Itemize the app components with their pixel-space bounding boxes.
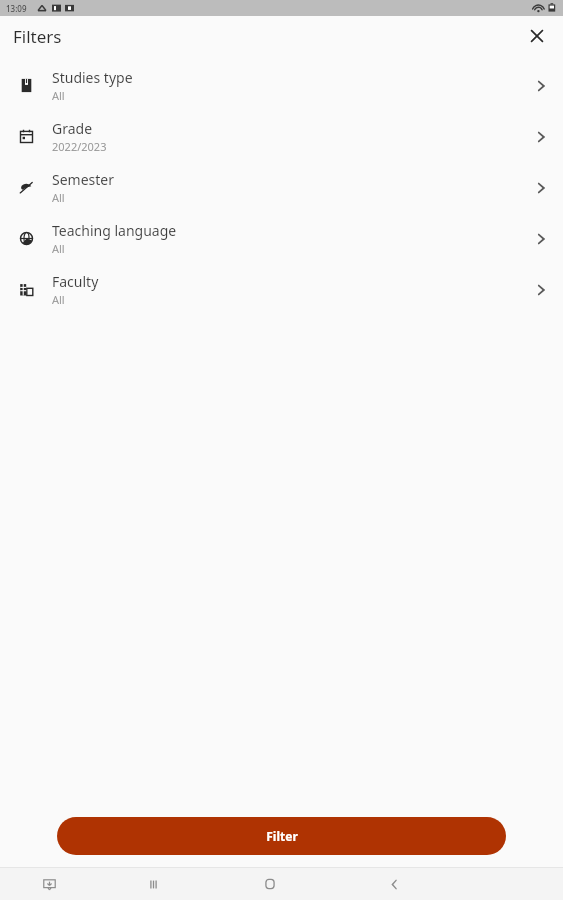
staticText: 2022/2023 [52, 139, 107, 154]
staticText: Filters [13, 25, 62, 48]
button[interactable]: Close [521, 20, 553, 52]
staticText: All [52, 88, 65, 103]
staticText: All [52, 241, 65, 256]
staticText: All [52, 292, 65, 307]
button[interactable]: Keyboard [0, 868, 98, 900]
button[interactable]: Teaching language [0, 213, 563, 264]
staticText: 13:09 [6, 3, 27, 14]
staticText: Grade [52, 119, 93, 138]
button[interactable]: Back [332, 868, 456, 900]
staticText: Filter [266, 828, 298, 844]
staticText: Semester [52, 170, 115, 189]
button[interactable]: Recents [98, 868, 208, 900]
staticText: Faculty [52, 272, 99, 291]
button[interactable]: Semester [0, 162, 563, 213]
button[interactable]: Filter [57, 817, 506, 855]
button[interactable]: Faculty [0, 264, 563, 315]
button[interactable]: Studies type [0, 60, 563, 111]
staticText: Studies type [52, 68, 133, 87]
button[interactable]: Home [208, 868, 332, 900]
button[interactable]: Grade [0, 111, 563, 162]
staticText: Teaching language [52, 221, 177, 240]
staticText: All [52, 190, 65, 205]
